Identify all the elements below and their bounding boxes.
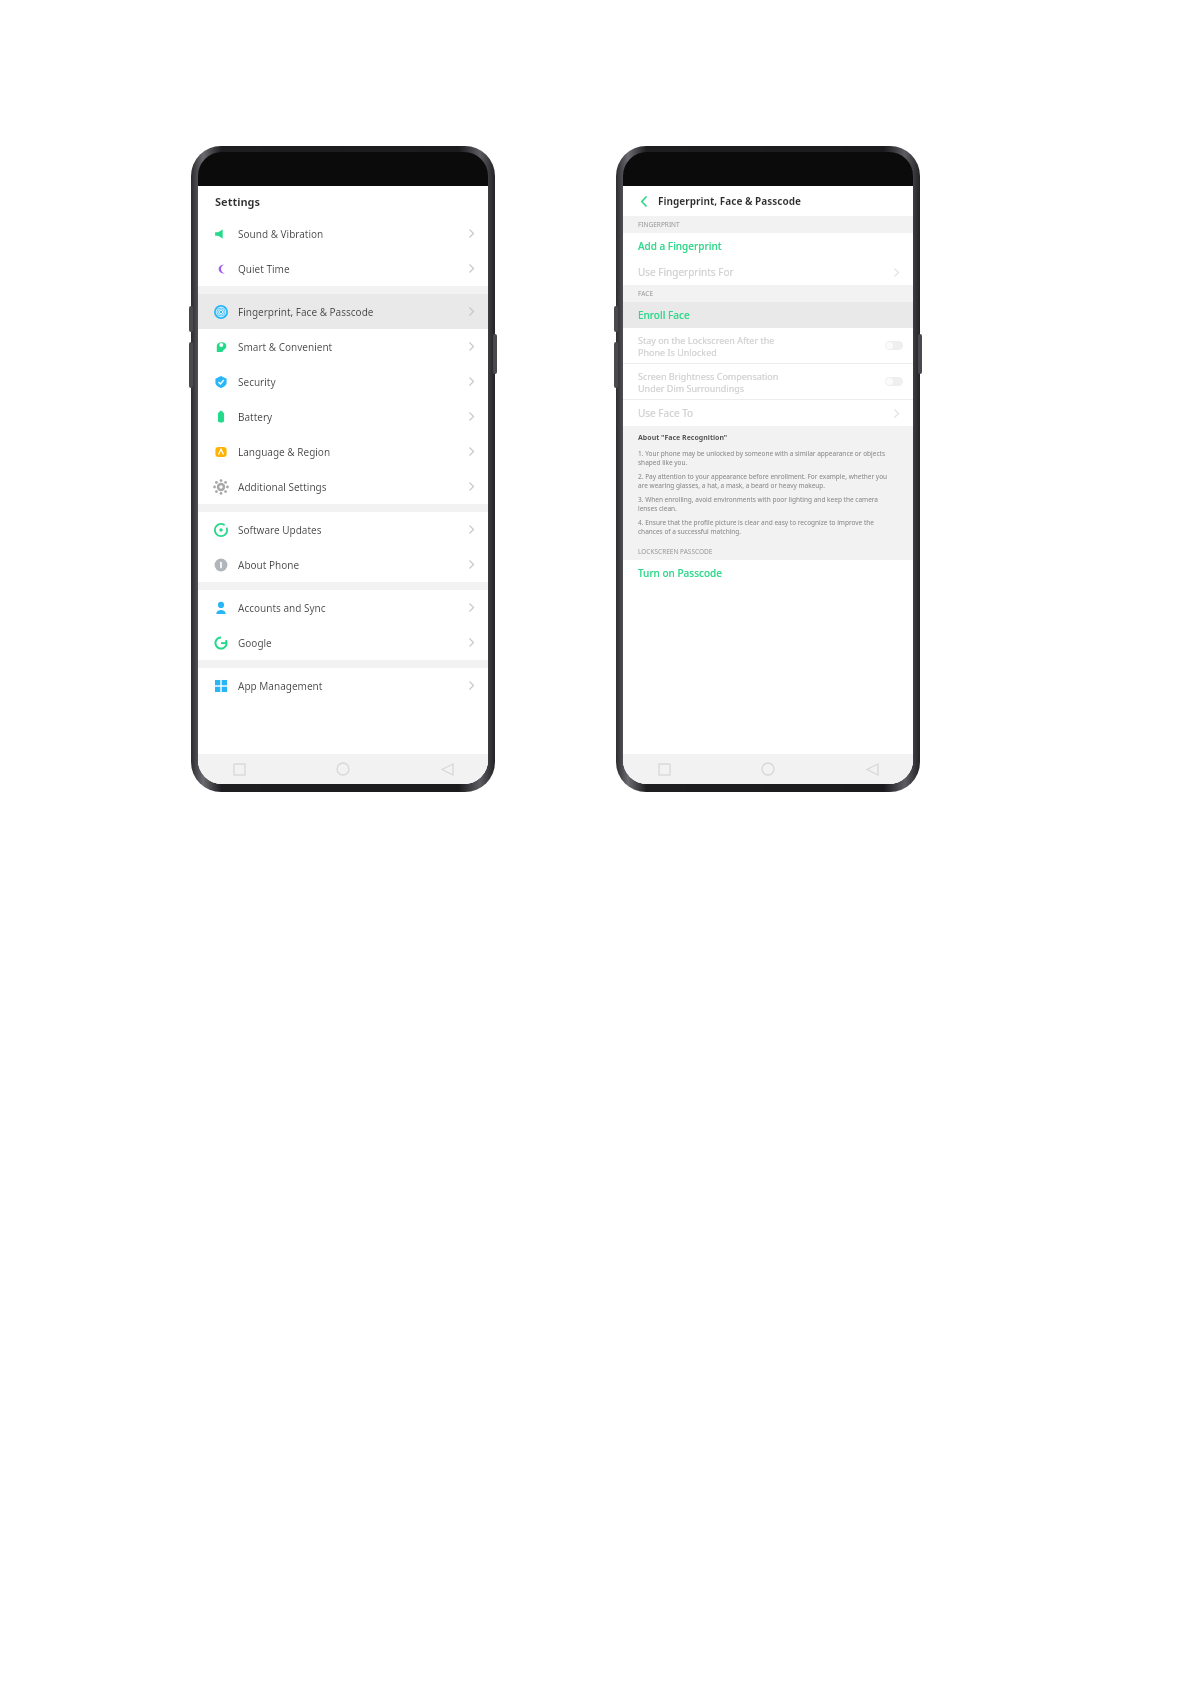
button[interactable]: Use Face To xyxy=(623,400,913,426)
staticText: Add a Fingerprint xyxy=(638,239,722,253)
staticText: Smart & Convenient xyxy=(238,340,333,354)
button[interactable]: Smart & Convenient xyxy=(198,329,488,364)
button[interactable]: Toggle xyxy=(885,341,903,350)
button[interactable]: Back xyxy=(432,754,462,784)
button[interactable]: Google xyxy=(198,625,488,660)
button[interactable]: Use Fingerprints For xyxy=(623,259,913,285)
button[interactable]: Software Updates xyxy=(198,512,488,547)
button[interactable]: Stay on the Lockscreen After the xyxy=(623,328,913,363)
button[interactable]: App Management xyxy=(198,668,488,703)
staticText: Google xyxy=(238,636,272,650)
staticText: About Phone xyxy=(238,558,300,572)
staticText: 3. When enrolling, avoid environments wi… xyxy=(638,495,898,513)
staticText: Settings xyxy=(215,194,261,209)
button[interactable]: About Phone xyxy=(198,547,488,582)
button[interactable]: Security xyxy=(198,364,488,399)
staticText: 1. Your phone may be unlocked by someone… xyxy=(638,449,898,467)
staticText: Use Face To xyxy=(638,406,694,420)
staticText: Software Updates xyxy=(238,523,322,537)
button[interactable]: Enroll Face xyxy=(623,302,913,328)
staticText: Fingerprint, Face & Passcode xyxy=(238,305,374,319)
button[interactable]: Additional Settings xyxy=(198,469,488,504)
button[interactable]: Back xyxy=(635,192,653,210)
button[interactable]: Battery xyxy=(198,399,488,434)
staticText: Screen Brightness Compensation xyxy=(638,370,779,382)
button[interactable]: Add a Fingerprint xyxy=(623,233,913,259)
button[interactable]: Fingerprint, Face & Passcode xyxy=(198,294,488,329)
staticText: Additional Settings xyxy=(238,480,327,494)
button[interactable]: Quiet Time xyxy=(198,251,488,286)
button[interactable]: Home xyxy=(753,754,783,784)
staticText: 2. Pay attention to your appearance befo… xyxy=(638,472,898,490)
button[interactable]: Home xyxy=(328,754,358,784)
button[interactable]: Language & Region xyxy=(198,434,488,469)
button[interactable]: Recents xyxy=(224,754,254,784)
staticText: Under Dim Surroundings xyxy=(638,382,745,394)
staticText: 4. Ensure that the profile picture is cl… xyxy=(638,518,898,536)
staticText: Phone Is Unlocked xyxy=(638,346,717,358)
button[interactable]: Sound & Vibration xyxy=(198,216,488,251)
staticText: Turn on Passcode xyxy=(638,566,722,580)
staticText: Accounts and Sync xyxy=(238,601,326,615)
staticText: App Management xyxy=(238,679,323,693)
button[interactable]: Screen Brightness Compensation xyxy=(623,364,913,399)
staticText: FACE xyxy=(638,289,653,298)
staticText: Use Fingerprints For xyxy=(638,265,734,279)
button[interactable]: Back xyxy=(857,754,887,784)
staticText: Stay on the Lockscreen After the xyxy=(638,334,775,346)
staticText: Sound & Vibration xyxy=(238,227,324,241)
staticText: FINGERPRINT xyxy=(638,220,680,229)
button[interactable]: Accounts and Sync xyxy=(198,590,488,625)
staticText: About "Face Recognition" xyxy=(638,433,728,443)
staticText: Enroll Face xyxy=(638,308,690,322)
button[interactable]: Turn on Passcode xyxy=(623,560,913,586)
staticText: Battery xyxy=(238,410,273,424)
staticText: Quiet Time xyxy=(238,262,290,276)
staticText: Fingerprint, Face & Passcode xyxy=(658,194,802,208)
staticText: Language & Region xyxy=(238,445,331,459)
button[interactable]: Recents xyxy=(649,754,679,784)
staticText: Security xyxy=(238,375,276,389)
staticText: LOCKSCREEN PASSCODE xyxy=(638,547,713,556)
button[interactable]: Toggle xyxy=(885,377,903,386)
